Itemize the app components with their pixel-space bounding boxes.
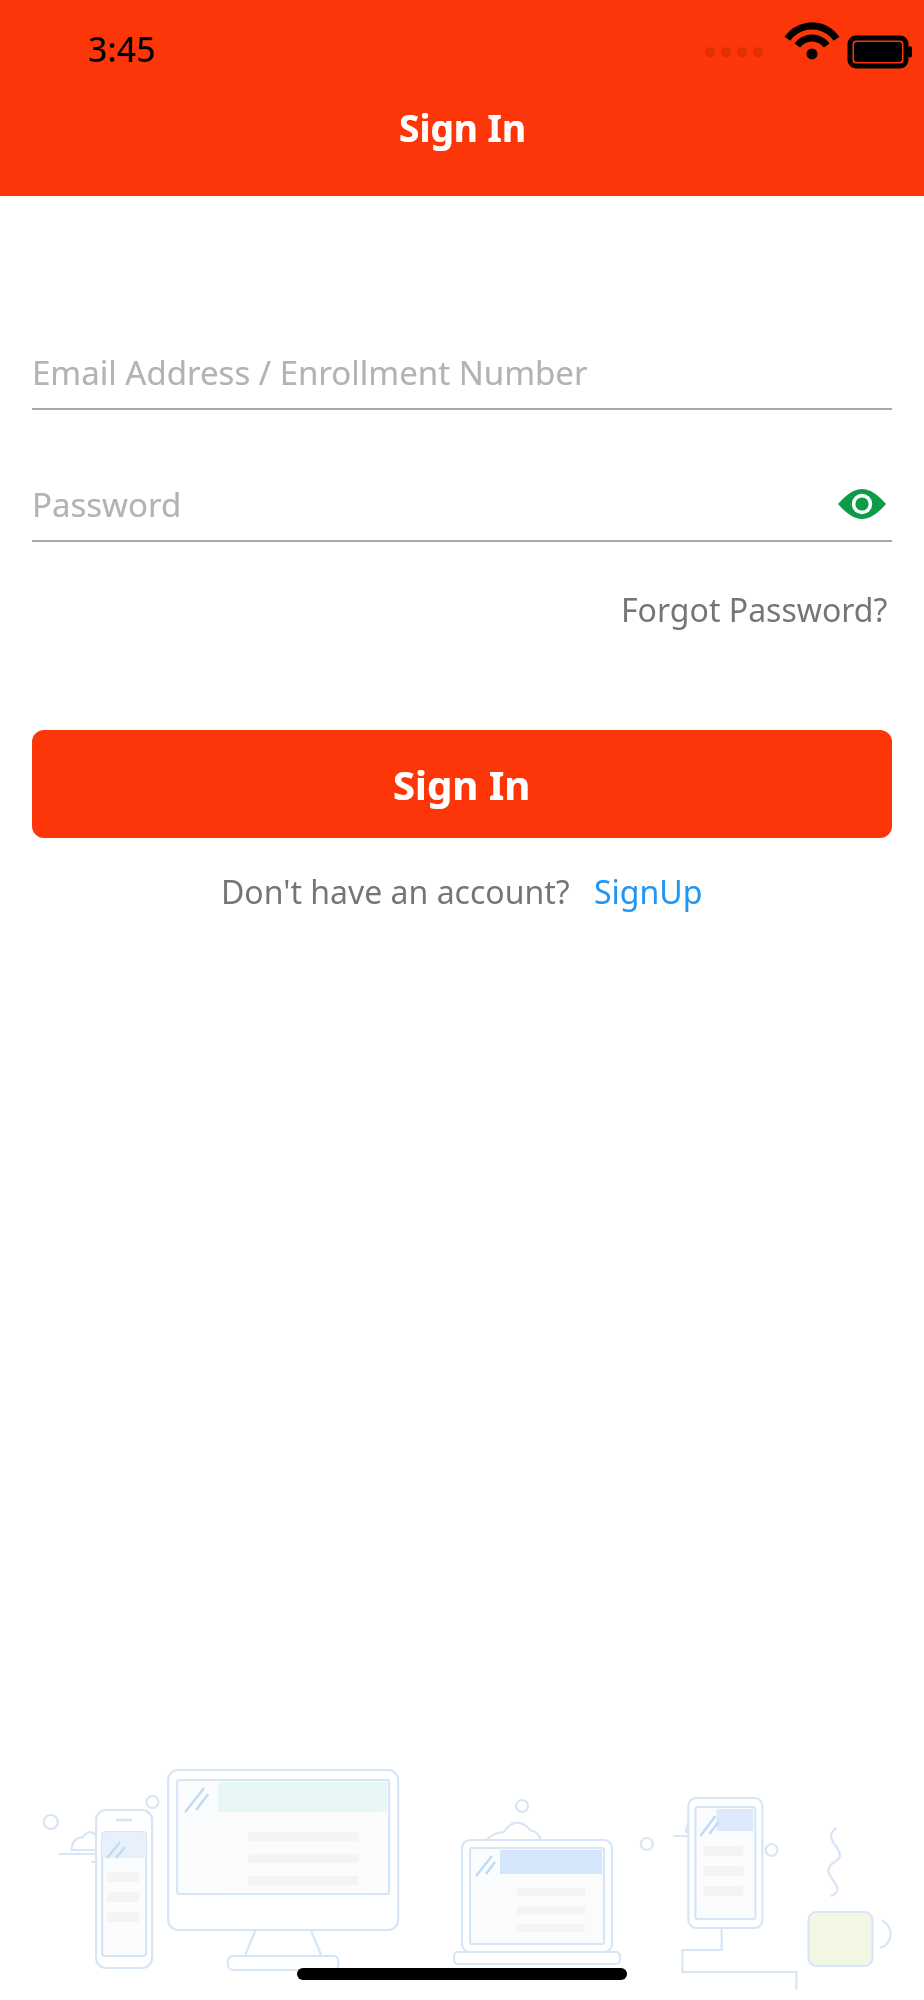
button[interactable]: Email Address / Enrollment Number	[32, 336, 892, 410]
button[interactable]: Show password	[832, 474, 892, 534]
button[interactable]: SignUp	[594, 870, 703, 914]
staticText: SignUp	[594, 870, 703, 914]
staticText: Sign In	[393, 757, 531, 811]
button[interactable]: Sign In	[32, 730, 892, 838]
staticText: Sign In	[399, 102, 526, 152]
button[interactable]: Forgot Password?	[617, 580, 892, 640]
button[interactable]: Password	[32, 468, 892, 540]
staticText: Forgot Password?	[621, 588, 888, 632]
staticText: Email Address / Enrollment Number	[32, 350, 588, 395]
staticText: 3:45	[88, 26, 156, 72]
staticText: Password	[32, 482, 182, 527]
staticText: Don't have an account?	[221, 870, 570, 914]
